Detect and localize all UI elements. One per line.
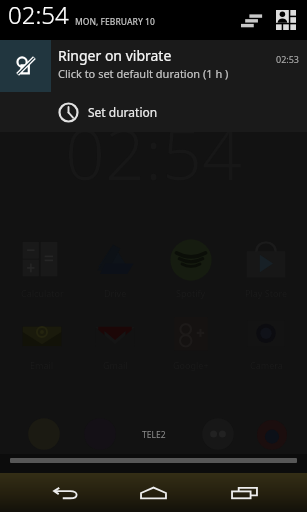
staticText: TELE2 <box>142 429 166 441</box>
button[interactable]: Clear all notifications <box>235 0 269 40</box>
button[interactable]: Home <box>127 474 179 512</box>
button[interactable]: Set duration <box>0 92 307 132</box>
button[interactable]: Messages <box>196 412 240 456</box>
staticText: Set duration <box>88 104 158 120</box>
button[interactable]: Chrome <box>250 412 294 456</box>
button[interactable]: Phone <box>22 412 66 456</box>
staticText: 02:54 <box>65 105 242 200</box>
button[interactable]: Spotify <box>169 238 213 300</box>
staticText: MON, FEBRUARY 10 <box>75 16 155 28</box>
button[interactable]: Recent apps <box>218 474 270 512</box>
staticText: Click to set default duration (1 h ) <box>58 66 229 81</box>
button[interactable]: Email <box>20 310 64 372</box>
staticText: 02:53 <box>276 53 300 65</box>
button[interactable]: Play Store <box>244 238 288 300</box>
button[interactable]: Gmail <box>93 310 137 372</box>
staticText: Ringer on vibrate <box>58 46 172 65</box>
button[interactable]: Quick settings <box>269 0 302 40</box>
staticText: 02:54 <box>8 0 69 31</box>
button[interactable]: Back <box>38 474 90 512</box>
button[interactable]: Calculator <box>20 238 64 300</box>
button[interactable]: Ringer on vibrate <box>0 40 307 92</box>
